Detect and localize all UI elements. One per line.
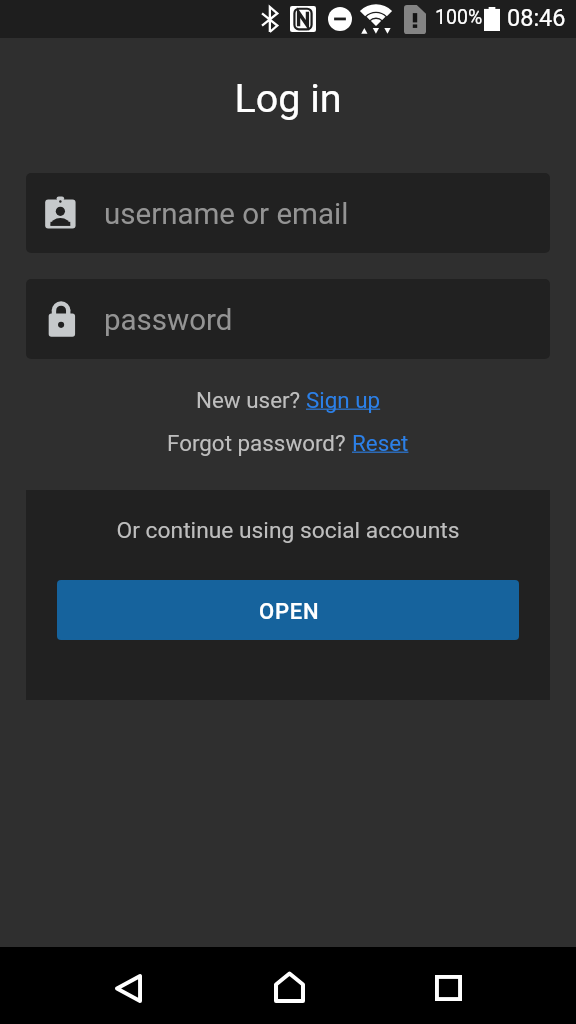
button[interactable]: Home: [224, 947, 352, 1024]
staticText: password: [104, 303, 233, 338]
staticText: 100%: [435, 6, 483, 29]
button[interactable]: password: [26, 279, 550, 359]
staticText: Or continue using social accounts: [26, 517, 550, 544]
button[interactable]: Sign up: [306, 387, 381, 413]
staticText: New user?: [196, 387, 306, 413]
button[interactable]: OPEN: [57, 580, 519, 640]
staticText: 08:46: [507, 4, 566, 32]
button[interactable]: Back: [64, 947, 192, 1024]
staticText: username or email: [104, 197, 349, 232]
button[interactable]: Recent apps: [384, 947, 512, 1024]
staticText: Forgot password?: [167, 430, 352, 456]
staticText: Log in: [0, 75, 576, 121]
button[interactable]: username or email: [26, 173, 550, 253]
button[interactable]: Reset: [352, 430, 409, 456]
staticText: OPEN: [259, 599, 320, 625]
